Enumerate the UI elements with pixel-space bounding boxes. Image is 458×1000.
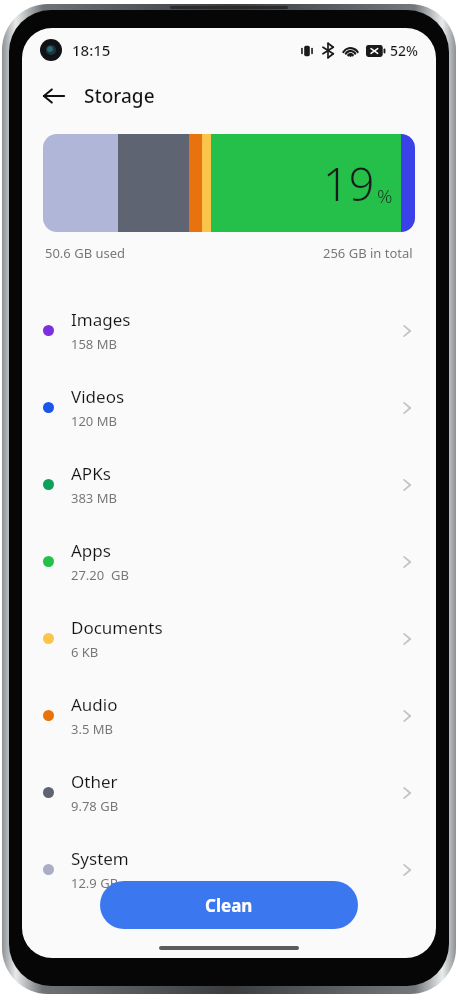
staticText: 50.6 GB used [45, 244, 126, 262]
staticText: Storage [84, 83, 155, 109]
staticText: 120 MB [71, 412, 117, 430]
staticText: Clean [205, 894, 253, 917]
staticText: Other [71, 770, 118, 793]
staticText: 18:15 [72, 40, 111, 60]
button[interactable]: Other [22, 754, 436, 831]
staticText: Videos [71, 385, 125, 408]
staticText: Images [71, 308, 131, 331]
staticText: 12.9 GB [71, 874, 119, 892]
staticText: 52% [390, 41, 418, 60]
staticText: Apps [71, 539, 111, 562]
staticText: 9.78 GB [71, 797, 119, 815]
button[interactable]: APKs [22, 446, 436, 523]
staticText: 383 MB [71, 489, 117, 507]
staticText: APKs [71, 462, 111, 485]
button[interactable]: Images [22, 292, 436, 369]
staticText: 19 [323, 153, 375, 214]
button[interactable]: Clean [100, 881, 358, 929]
button[interactable]: Videos [22, 369, 436, 446]
button[interactable]: System [22, 831, 436, 908]
staticText: 158 MB [71, 335, 117, 353]
button[interactable]: Back [32, 74, 76, 118]
staticText: Audio [71, 693, 118, 716]
button[interactable]: Apps [22, 523, 436, 600]
staticText: System [71, 847, 129, 870]
staticText: 6 KB [71, 643, 99, 661]
staticText: Documents [71, 616, 163, 639]
staticText: 27.20 GB [71, 566, 129, 584]
button[interactable]: Documents [22, 600, 436, 677]
button[interactable]: Audio [22, 677, 436, 754]
staticText: 256 GB in total [323, 244, 413, 262]
staticText: % [377, 183, 393, 209]
staticText: 3.5 MB [71, 720, 113, 738]
